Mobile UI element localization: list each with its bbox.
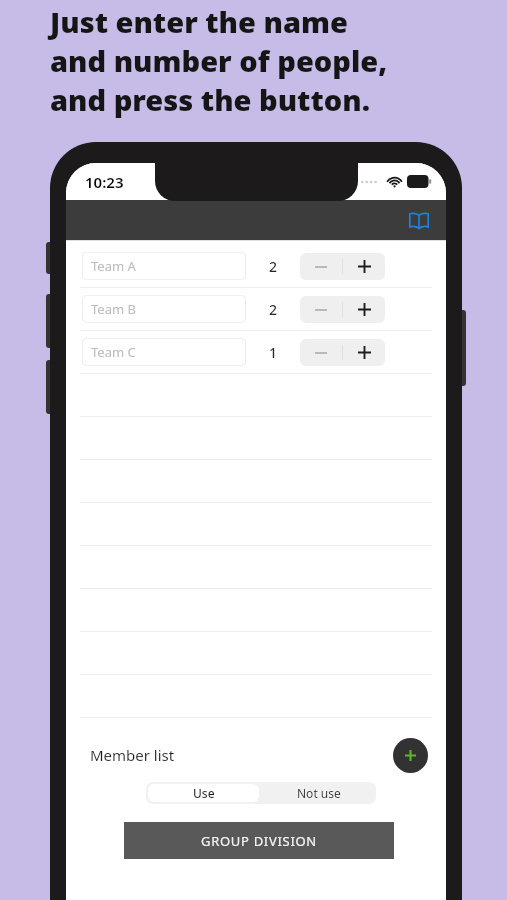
staticText: and press the button. bbox=[50, 80, 371, 119]
staticText: Not use bbox=[297, 785, 341, 801]
button[interactable]: Manual bbox=[402, 203, 436, 237]
staticText: 2 bbox=[269, 257, 278, 276]
button[interactable]: Team C bbox=[66, 331, 446, 373]
button[interactable]: Decrease bbox=[300, 296, 342, 323]
staticText: and number of people, bbox=[50, 41, 388, 80]
button[interactable]: Increase bbox=[343, 296, 385, 323]
staticText: Just enter the name bbox=[50, 2, 348, 41]
button[interactable]: Use bbox=[148, 784, 259, 802]
staticText: 10:23 bbox=[85, 172, 124, 192]
staticText: Team A bbox=[91, 257, 136, 275]
button[interactable]: Decrease bbox=[300, 339, 342, 366]
button[interactable]: Increase bbox=[343, 339, 385, 366]
staticText: Use bbox=[193, 785, 215, 801]
button[interactable]: Add member bbox=[393, 738, 428, 773]
staticText: 1 bbox=[269, 343, 278, 362]
button[interactable]: Team B bbox=[66, 288, 446, 330]
button[interactable]: Decrease bbox=[300, 253, 342, 280]
staticText: GROUP DIVISION bbox=[201, 832, 317, 850]
staticText: Member list bbox=[90, 745, 175, 765]
button[interactable]: Increase bbox=[343, 253, 385, 280]
button[interactable]: GROUP DIVISION bbox=[124, 822, 394, 859]
button[interactable]: Team A bbox=[66, 245, 446, 287]
staticText: Team C bbox=[91, 343, 136, 361]
button[interactable]: Not use bbox=[261, 782, 376, 804]
staticText: 2 bbox=[269, 300, 278, 319]
staticText: Team B bbox=[91, 300, 136, 318]
